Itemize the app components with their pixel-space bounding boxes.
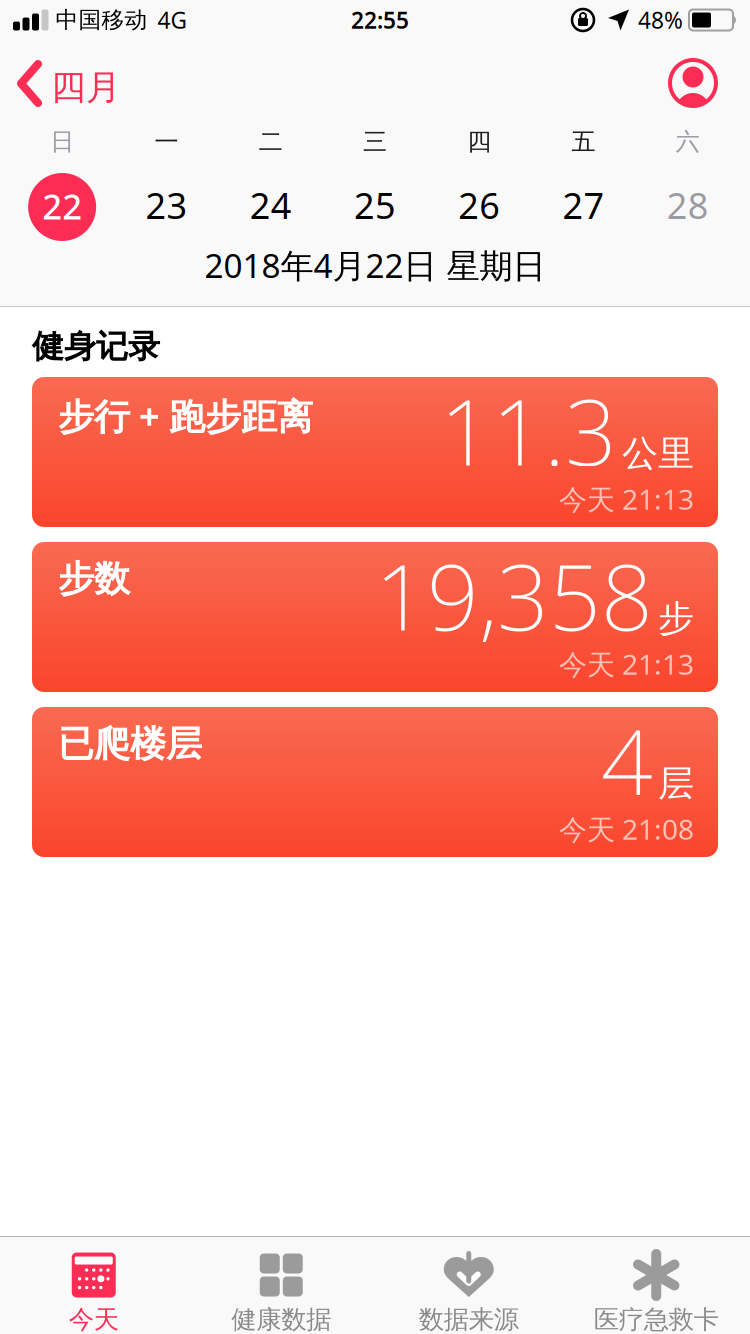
staticText: 一	[154, 127, 178, 156]
staticText: 26	[458, 181, 500, 229]
staticText: 23	[145, 181, 187, 229]
staticText: 步数	[58, 557, 130, 601]
staticText: 公里	[622, 431, 694, 475]
button[interactable]: 24	[219, 173, 323, 241]
button[interactable]: 医疗急救卡	[562, 1252, 750, 1334]
button[interactable]: 健康资料	[668, 58, 718, 108]
staticText: 27	[563, 181, 605, 229]
staticText: 4G	[157, 5, 187, 35]
staticText: 2018年4月22日 星期日	[204, 243, 545, 287]
staticText: 四	[467, 127, 491, 156]
staticText: 数据来源	[419, 1304, 519, 1334]
staticText: 今天 21:13	[559, 480, 694, 518]
staticText: 11.3	[440, 370, 617, 490]
staticText: 22	[42, 183, 82, 229]
button[interactable]: 26	[427, 173, 531, 241]
staticText: 中国移动	[55, 6, 147, 34]
staticText: 四月	[51, 66, 121, 109]
staticText: 二	[259, 127, 283, 156]
staticText: 19,358	[375, 535, 653, 655]
button[interactable]: 28	[636, 173, 740, 241]
staticText: 48%	[638, 5, 683, 35]
staticText: 健身记录	[32, 327, 160, 366]
staticText: 步行 + 跑步距离	[58, 392, 313, 440]
button[interactable]: 23	[114, 173, 219, 241]
staticText: 医疗急救卡	[594, 1304, 719, 1334]
staticText: 28	[667, 181, 709, 229]
staticText: 步	[658, 596, 694, 640]
staticText: 三	[363, 127, 387, 156]
staticText: 今天 21:13	[559, 645, 694, 683]
button[interactable]: 步数	[32, 542, 718, 692]
staticText: 24	[250, 181, 292, 229]
staticText: 今天	[69, 1304, 119, 1334]
staticText: 日	[50, 127, 74, 156]
button[interactable]: 四月	[17, 62, 121, 105]
staticText: 五	[572, 127, 596, 156]
button[interactable]: 数据来源	[375, 1252, 562, 1334]
staticText: 今天 21:08	[559, 810, 694, 848]
button[interactable]: 22	[10, 173, 114, 241]
staticText: 健康数据	[231, 1304, 331, 1334]
button[interactable]: 25	[323, 173, 427, 241]
staticText: 25	[354, 181, 396, 229]
button[interactable]: 健康数据	[187, 1252, 375, 1334]
staticText: 六	[676, 127, 700, 156]
button[interactable]: 今天	[0, 1252, 187, 1334]
staticText: 层	[658, 761, 694, 805]
button[interactable]: 27	[531, 173, 636, 241]
staticText: 已爬楼层	[58, 722, 202, 766]
button[interactable]: 步行 + 跑步距离	[32, 377, 718, 527]
staticText: 22:55	[351, 5, 409, 35]
button[interactable]: 已爬楼层	[32, 707, 718, 857]
staticText: 4	[601, 700, 653, 820]
